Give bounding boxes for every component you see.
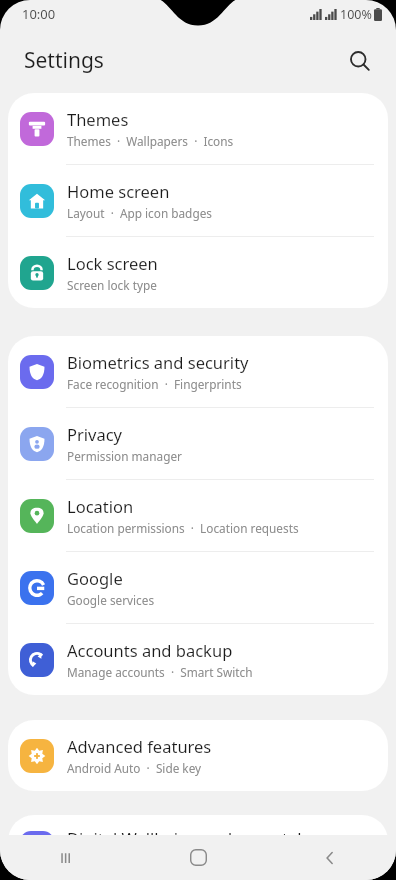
staticText: Accounts and backup	[67, 639, 233, 661]
button[interactable]: Advanced features	[8, 720, 388, 791]
staticText: Privacy	[67, 423, 123, 445]
button[interactable]: Digital Wellbeing and parental	[8, 815, 388, 880]
staticText: 100%	[340, 6, 372, 23]
button[interactable]: Biometrics and security	[8, 336, 388, 407]
button[interactable]: Accounts and backup	[8, 624, 388, 695]
staticText: Screen lock type	[67, 277, 157, 293]
staticText: Lock screen	[67, 252, 158, 274]
button[interactable]: Location	[8, 480, 388, 551]
staticText: Android Auto · Side key	[67, 760, 202, 776]
button[interactable]: Recent apps	[0, 835, 132, 880]
staticText: controls	[67, 852, 112, 868]
staticText: Google	[67, 567, 123, 589]
staticText: Face recognition · Fingerprints	[67, 376, 242, 392]
staticText: Google services	[67, 592, 155, 608]
button[interactable]: Home screen	[8, 165, 388, 236]
button[interactable]: Themes	[8, 93, 388, 164]
button[interactable]: Back	[264, 835, 396, 880]
staticText: Layout · App icon badges	[67, 205, 212, 221]
staticText: Location	[67, 495, 134, 517]
staticText: Themes	[67, 108, 129, 130]
staticText: Manage accounts · Smart Switch	[67, 664, 253, 680]
staticText: Home screen	[67, 180, 170, 202]
button[interactable]: Privacy	[8, 408, 388, 479]
button[interactable]: Lock screen	[8, 237, 388, 308]
staticText: Settings	[24, 46, 104, 75]
staticText: 10:00	[22, 5, 56, 23]
staticText: Advanced features	[67, 735, 212, 757]
staticText: Themes · Wallpapers · Icons	[67, 133, 234, 149]
button[interactable]: Google	[8, 552, 388, 623]
staticText: Biometrics and security	[67, 351, 249, 373]
button[interactable]: Search	[338, 39, 382, 83]
staticText: Digital Wellbeing and parental	[67, 827, 302, 849]
staticText: Permission manager	[67, 448, 182, 464]
button[interactable]: Home	[132, 835, 264, 880]
staticText: Location permissions · Location requests	[67, 520, 299, 536]
